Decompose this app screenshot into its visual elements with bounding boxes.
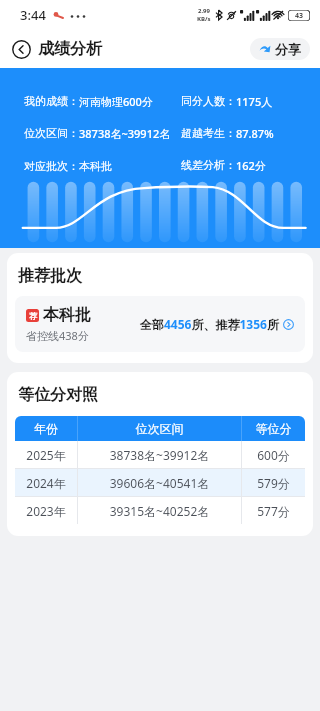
staticText: 2.99 <box>198 7 210 15</box>
staticText: 3:44 <box>20 6 46 24</box>
staticText: 同分人数： <box>181 94 236 108</box>
staticText: 省控线438分 <box>26 328 89 343</box>
staticText: 对应批次： <box>24 159 79 173</box>
staticText: 162分 <box>236 158 266 173</box>
staticText: 38738名~39912名 <box>79 126 171 141</box>
staticText: 87.87% <box>236 126 274 141</box>
staticText: 位次区间 <box>78 421 241 436</box>
staticText: 位次区间： <box>24 126 79 140</box>
staticText: 39606名~40541名 <box>78 475 241 491</box>
staticText: 579分 <box>242 475 305 491</box>
staticText: KB/s <box>197 15 211 23</box>
staticText: 河南物理600分 <box>79 94 153 109</box>
staticText: 线差分析： <box>181 158 236 172</box>
button[interactable]: 分享 <box>250 38 310 60</box>
staticText: 我的成绩： <box>24 94 79 108</box>
staticText: 2024年 <box>15 475 77 491</box>
button[interactable]: 荐 <box>15 296 305 352</box>
staticText: 等位分对照 <box>18 385 98 405</box>
staticText: 全部4456所、推荐1356所 <box>140 316 279 332</box>
staticText: 成绩分析 <box>38 39 102 59</box>
staticText: 38738名~39912名 <box>78 447 241 463</box>
other: Back <box>12 40 31 59</box>
staticText: 1175人 <box>236 94 273 109</box>
staticText: 荐 <box>29 311 37 321</box>
staticText: 600分 <box>242 447 305 463</box>
staticText: 超越考生： <box>181 126 236 140</box>
staticText: 43 <box>295 11 304 21</box>
staticText: 577分 <box>242 503 305 519</box>
staticText: 2023年 <box>15 503 77 519</box>
staticText: 本科批 <box>43 305 91 325</box>
staticText: 年份 <box>15 421 77 436</box>
button[interactable]: Back <box>10 37 104 61</box>
staticText: 本科批 <box>79 159 112 173</box>
staticText: 2025年 <box>15 447 77 463</box>
staticText: 分享 <box>275 41 301 57</box>
staticText: 39315名~40252名 <box>78 503 241 519</box>
staticText: 等位分 <box>242 421 305 436</box>
staticText: 推荐批次 <box>18 266 82 286</box>
